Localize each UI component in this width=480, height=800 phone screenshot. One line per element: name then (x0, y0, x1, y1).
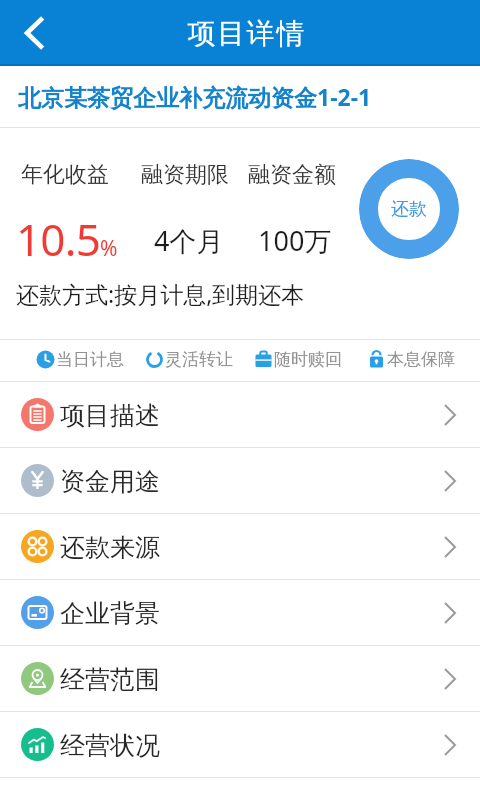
staticText: 融资金额 (248, 161, 336, 189)
staticText: 100万 (258, 222, 332, 259)
staticText: 还款来源 (60, 532, 160, 563)
staticText: 灵活转让 (165, 349, 233, 370)
button[interactable]: 经营状况 (0, 712, 480, 778)
staticText: 经营状况 (60, 730, 160, 761)
button[interactable]: 随时赎回 (254, 339, 342, 379)
staticText: 企业背景 (60, 598, 160, 629)
staticText: 年化收益 (21, 161, 109, 189)
staticText: 项目详情 (187, 16, 305, 51)
staticText: 资金用途 (60, 466, 160, 497)
button[interactable]: 还款 (359, 159, 459, 259)
staticText: 10.5% (16, 209, 118, 269)
staticText: 项目描述 (60, 400, 160, 431)
button[interactable]: 经营范围 (0, 646, 480, 712)
staticText: 随时赎回 (274, 349, 342, 370)
staticText: 还款 (391, 198, 427, 221)
button[interactable]: 项目描述 (0, 382, 480, 448)
staticText: 经营范围 (60, 664, 160, 695)
button[interactable] (0, 0, 66, 66)
button[interactable]: 还款来源 (0, 514, 480, 580)
staticText: 当日计息 (56, 349, 124, 370)
staticText: 4个月 (154, 222, 224, 259)
staticText: 本息保障 (387, 349, 455, 370)
button[interactable]: 本息保障 (367, 339, 455, 379)
button[interactable]: 灵活转让 (145, 339, 233, 379)
button[interactable]: 当日计息 (36, 339, 124, 379)
staticText: 北京某茶贸企业补充流动资金1-2-1 (18, 81, 372, 112)
staticText: 融资期限 (141, 161, 229, 189)
staticText: 还款方式:按月计息,到期还本 (16, 278, 305, 309)
button[interactable]: 资金用途 (0, 448, 480, 514)
button[interactable]: 企业背景 (0, 580, 480, 646)
